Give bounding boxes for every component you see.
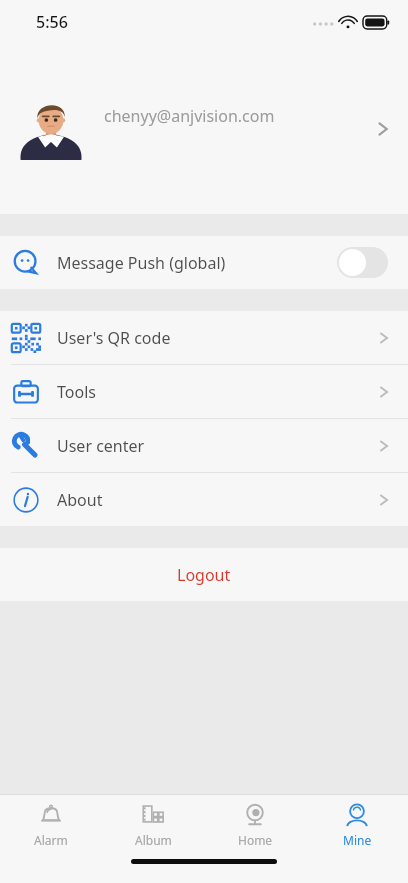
staticText: chenyy@anjvision.com — [104, 105, 376, 127]
staticText: User center — [57, 435, 378, 457]
staticText: Album — [135, 832, 172, 848]
button[interactable]: User center — [0, 419, 408, 473]
staticText: Message Push (global) — [57, 252, 337, 274]
button[interactable]: Message push toggle, off — [337, 247, 388, 278]
button[interactable]: User's QR code — [0, 311, 408, 365]
button[interactable]: Tools — [0, 365, 408, 419]
staticText: Logout — [177, 564, 231, 586]
button[interactable]: chenyy@anjvision.com — [0, 44, 408, 214]
button[interactable]: Logout — [0, 548, 408, 601]
staticText: Alarm — [34, 832, 68, 848]
staticText: Tools — [57, 381, 378, 403]
staticText: Mine — [343, 832, 372, 848]
staticText: 5:56 — [36, 11, 68, 33]
button[interactable]: Album — [102, 795, 204, 851]
staticText: About — [57, 489, 378, 511]
button[interactable]: Message Push (global) — [0, 236, 408, 289]
staticText: User's QR code — [57, 327, 378, 349]
button[interactable]: About — [0, 473, 408, 526]
button[interactable]: Mine — [306, 795, 408, 851]
button[interactable]: Alarm — [0, 795, 102, 851]
button[interactable]: Home — [204, 795, 306, 851]
staticText: Home — [238, 832, 273, 848]
